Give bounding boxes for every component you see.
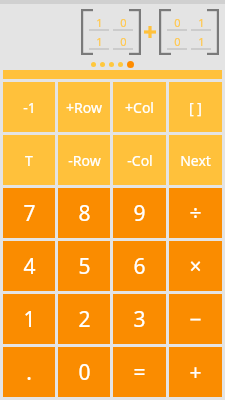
button[interactable]: − [169,294,222,344]
staticText: 0 [78,358,91,387]
staticText: 0 [120,15,127,30]
staticText: -Col [127,151,153,170]
staticText: − [189,305,202,334]
button[interactable]: -Col [113,135,166,185]
button[interactable]: 4 [3,241,55,291]
staticText: 0 [174,15,181,30]
staticText: 1 [96,34,103,49]
staticText: = [133,358,146,387]
staticText: 2 [78,305,91,334]
staticText: 1 [198,15,205,30]
button[interactable]: 8 [58,188,110,238]
button[interactable]: 1 [190,33,212,50]
button[interactable]: × [169,241,222,291]
button[interactable]: ÷ [169,188,222,238]
staticText: + [189,358,202,387]
button[interactable]: 1 [88,14,110,31]
button[interactable]: 0 [58,347,110,397]
button[interactable]: = [113,347,166,397]
staticText: 6 [133,252,146,281]
staticText: 4 [23,252,36,281]
staticText: 1 [96,15,103,30]
staticText: T [25,151,33,170]
staticText: 8 [78,199,91,228]
button[interactable]: +Row [58,82,110,132]
button[interactable]: 0 [112,33,134,50]
button[interactable]: +Col [113,82,166,132]
button[interactable]: 9 [113,188,166,238]
button[interactable]: 0 [112,14,134,31]
button[interactable]: . [3,347,55,397]
button[interactable]: 7 [3,188,55,238]
button[interactable]: T [3,135,55,185]
staticText: ÷ [189,199,202,228]
staticText: -Row [68,151,101,170]
staticText: . [26,358,32,387]
staticText: × [189,252,202,281]
staticText: [ ] [189,98,202,117]
button[interactable]: 0 [166,33,188,50]
staticText: 1 [198,34,205,49]
button[interactable]: 0 [166,14,188,31]
staticText: 0 [174,34,181,49]
staticText: -1 [23,98,36,117]
staticText: Next [180,151,211,170]
staticText: 0 [120,34,127,49]
button[interactable]: [ ] [169,82,222,132]
staticText: +Col [125,98,154,117]
staticText: 3 [133,305,146,334]
button[interactable]: -1 [3,82,55,132]
staticText: 5 [78,252,91,281]
button[interactable]: 3 [113,294,166,344]
button[interactable]: 1 [3,294,55,344]
button[interactable]: 2 [58,294,110,344]
button[interactable]: 1 [88,33,110,50]
button[interactable]: 1 [190,14,212,31]
button[interactable]: 5 [58,241,110,291]
staticText: +Row [66,98,102,117]
staticText: 7 [23,199,36,228]
staticText: 1 [23,305,36,334]
staticText: 9 [133,199,146,228]
button[interactable]: -Row [58,135,110,185]
button[interactable]: + [169,347,222,397]
button[interactable]: 6 [113,241,166,291]
button[interactable]: Next [169,135,222,185]
